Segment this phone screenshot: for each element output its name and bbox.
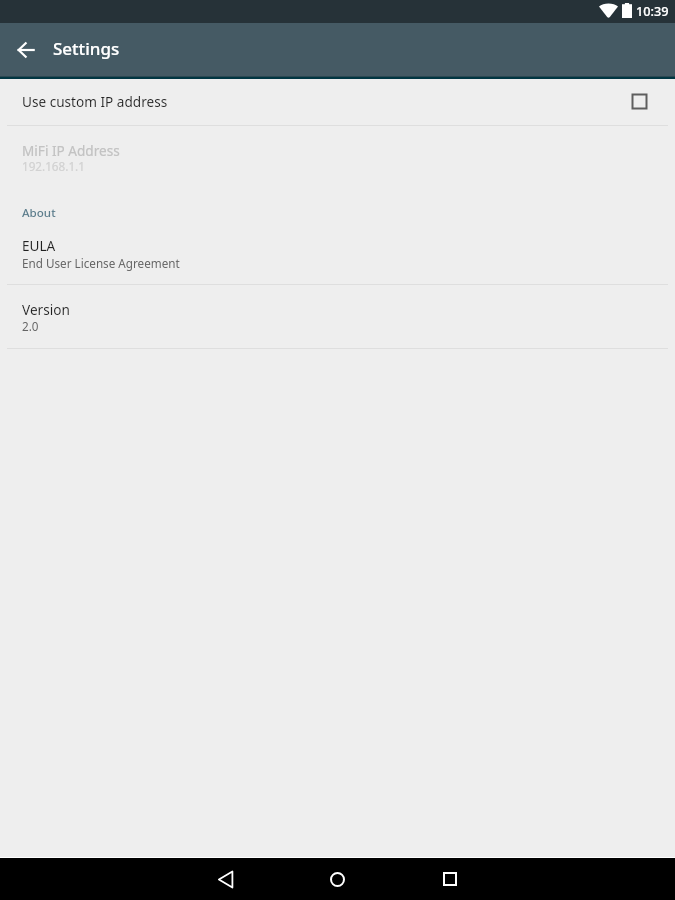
- staticText: Version: [22, 300, 70, 319]
- button[interactable]: Use custom IP address: [0, 78, 675, 125]
- staticText: 10:39: [636, 2, 669, 19]
- button[interactable]: EULA: [0, 225, 675, 284]
- staticText: EULA: [22, 236, 56, 255]
- staticText: Settings: [53, 37, 120, 60]
- staticText: MiFi IP Address: [22, 141, 120, 160]
- button[interactable]: Back: [0, 23, 50, 76]
- staticText: About: [22, 205, 56, 221]
- button[interactable]: Home: [292, 858, 382, 900]
- staticText: End User License Agreement: [22, 255, 180, 271]
- button[interactable]: Version: [0, 285, 675, 348]
- button[interactable]: Back: [180, 858, 270, 900]
- staticText: Use custom IP address: [22, 92, 631, 111]
- button[interactable]: Recent apps: [405, 858, 495, 900]
- staticText: 192.168.1.1: [22, 158, 85, 174]
- staticText: 2.0: [22, 318, 39, 334]
- button[interactable]: MiFi IP Address: [0, 126, 675, 188]
